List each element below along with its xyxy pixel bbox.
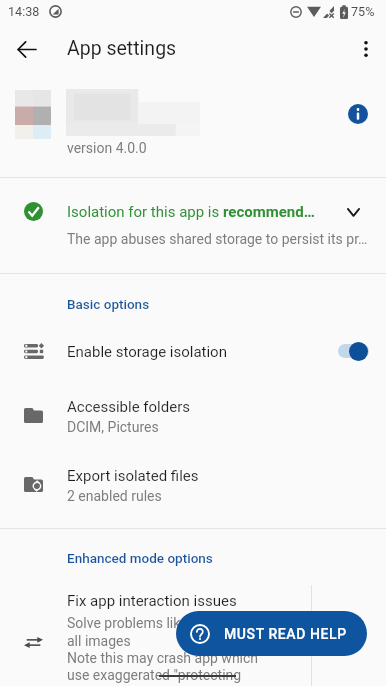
button[interactable]: Basic options [67,296,150,312]
button[interactable]: Fix app interaction issues [0,585,311,686]
button[interactable]: More options [346,29,386,69]
staticText: DCIM, Pictures [67,419,159,435]
staticText: The app abuses shared storage to persist… [67,231,368,247]
button[interactable]: Navigate up [6,29,46,69]
staticText: 2 enabled rules [67,488,162,504]
staticText: App settings [67,37,177,60]
staticText: 75% [351,4,375,19]
staticText: Accessible folders [67,398,190,416]
button[interactable]: MUST READ HELP [176,611,367,656]
staticText: MUST READ HELP [224,626,347,642]
staticText: 14:38 [8,4,40,19]
staticText: Export isolated files [67,467,199,485]
button[interactable]: App settings [67,37,177,60]
button[interactable]: Accessible folders [0,392,386,442]
staticText: Isolation for this app is [67,203,223,221]
button[interactable]: version 4.0.0 [0,78,386,177]
staticText: recommend… [223,203,315,221]
staticText: Solve problems like failure to share all… [67,615,285,686]
button[interactable]: Export isolated files [0,461,386,511]
button[interactable]: Enable storage isolation [335,337,375,365]
staticText: Fix app interaction issues [67,592,237,610]
staticText: version 4.0.0 [67,140,147,156]
button[interactable]: Enhanced mode options [67,550,213,566]
staticText: Enable storage isolation [67,343,227,361]
button[interactable]: Isolation for this app is [0,178,386,273]
button[interactable]: Enable storage isolation [0,329,386,375]
button[interactable]: Show more [336,195,370,229]
button[interactable]: App info [340,96,376,132]
